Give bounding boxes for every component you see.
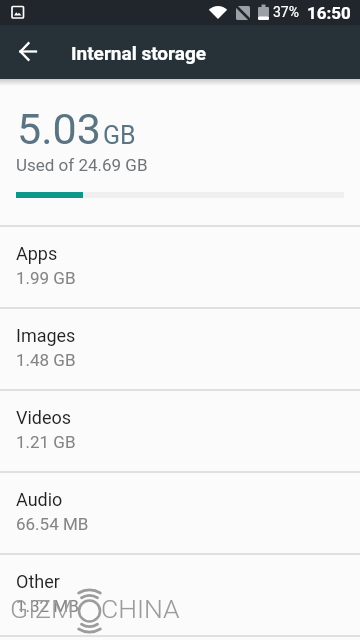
button[interactable]: Apps [0, 227, 360, 307]
staticText: 66.54 MB [16, 514, 89, 534]
staticText: Used of 24.69 GB [16, 155, 148, 175]
staticText: 37% [273, 4, 299, 20]
staticText: CHINA [101, 593, 180, 624]
staticText: GB [103, 121, 136, 150]
staticText: 16:50 [307, 3, 351, 23]
button[interactable] [0, 25, 54, 79]
button[interactable]: Audio [0, 473, 360, 553]
staticText: Apps [16, 243, 58, 264]
staticText: 5.03 [17, 104, 101, 154]
staticText: Images [16, 325, 76, 346]
staticText: Videos [16, 407, 72, 428]
staticText: GIZM [10, 593, 74, 624]
staticText: Internal storage [71, 42, 207, 64]
staticText: Audio [16, 489, 63, 510]
staticText: Other [16, 571, 60, 592]
staticText: 1.99 GB [16, 268, 76, 288]
button[interactable]: Videos [0, 391, 360, 471]
staticText: 1.32 MB [16, 596, 79, 616]
staticText: 1.21 GB [16, 432, 76, 452]
staticText: 1.48 GB [16, 350, 76, 370]
button[interactable]: Other [0, 555, 360, 635]
button[interactable]: Images [0, 309, 360, 389]
